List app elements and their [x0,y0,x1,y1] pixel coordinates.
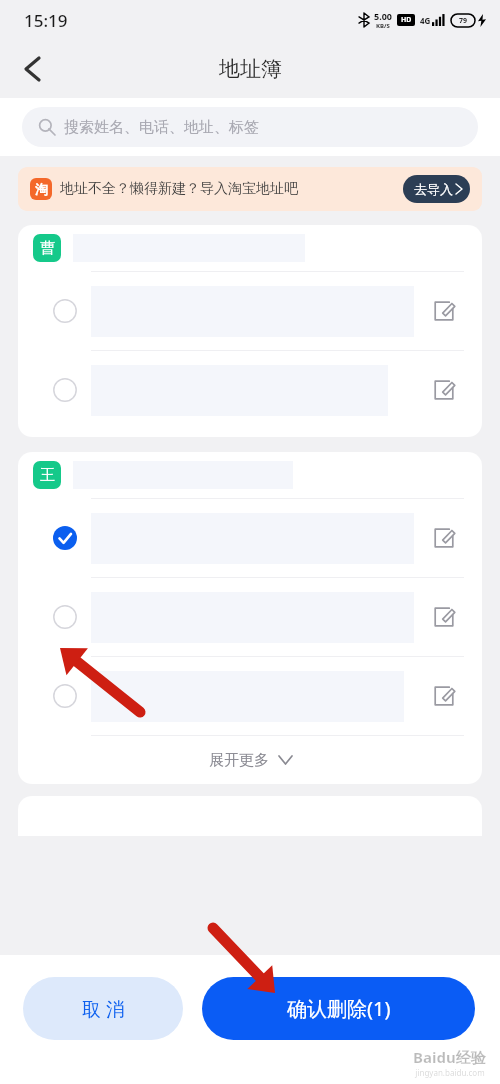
staticText: HD [401,15,412,25]
staticText: 79 [459,16,468,26]
button[interactable]: 王 [18,452,482,498]
button[interactable]: 淘 [18,167,482,211]
button[interactable]: Select [52,298,78,324]
staticText: 取 消 [82,996,125,1022]
button[interactable]: Selected [52,525,78,551]
staticText: 地址簿 [219,56,282,82]
button[interactable]: Select [52,377,78,403]
button[interactable]: Selected [18,499,482,577]
button[interactable]: Edit address [424,597,464,637]
staticText: KB/S [376,22,390,30]
button[interactable]: Back [8,45,56,93]
staticText: 去导入 [414,181,453,197]
staticText: 淘 [35,181,48,197]
button[interactable]: Edit address [424,291,464,331]
button[interactable]: Edit address [424,370,464,410]
button[interactable]: 取 消 [23,977,183,1040]
button[interactable]: Select [52,604,78,630]
staticText: 展开更多 [209,751,269,770]
staticText: 5.00 [374,10,392,22]
button[interactable]: 搜索姓名、电话、地址、标签 [22,107,478,147]
button[interactable]: Select [18,272,482,350]
staticText: 15:19 [24,9,68,32]
staticText: Baidu经验 [413,1047,486,1067]
button[interactable]: 展开更多 [18,736,482,784]
button[interactable]: Select [18,578,482,656]
button[interactable]: Edit address [424,518,464,558]
button[interactable]: Edit address [424,676,464,716]
staticText: 搜索姓名、电话、地址、标签 [64,118,259,137]
button[interactable]: Select [18,351,482,429]
staticText: 地址不全？懒得新建？导入淘宝地址吧 [60,180,298,198]
button[interactable]: Select [52,683,78,709]
staticText: 王 [40,466,55,485]
staticText: 曹 [40,239,55,258]
button[interactable]: 曹 [18,225,482,271]
staticText: 确认删除(1) [287,995,391,1022]
button[interactable]: 确认删除(1) [202,977,475,1040]
staticText: 4G [420,15,431,26]
button[interactable]: Select [18,657,482,735]
staticText: jingyan.baidu.com [415,1067,485,1078]
button[interactable]: 去导入 [403,175,470,203]
